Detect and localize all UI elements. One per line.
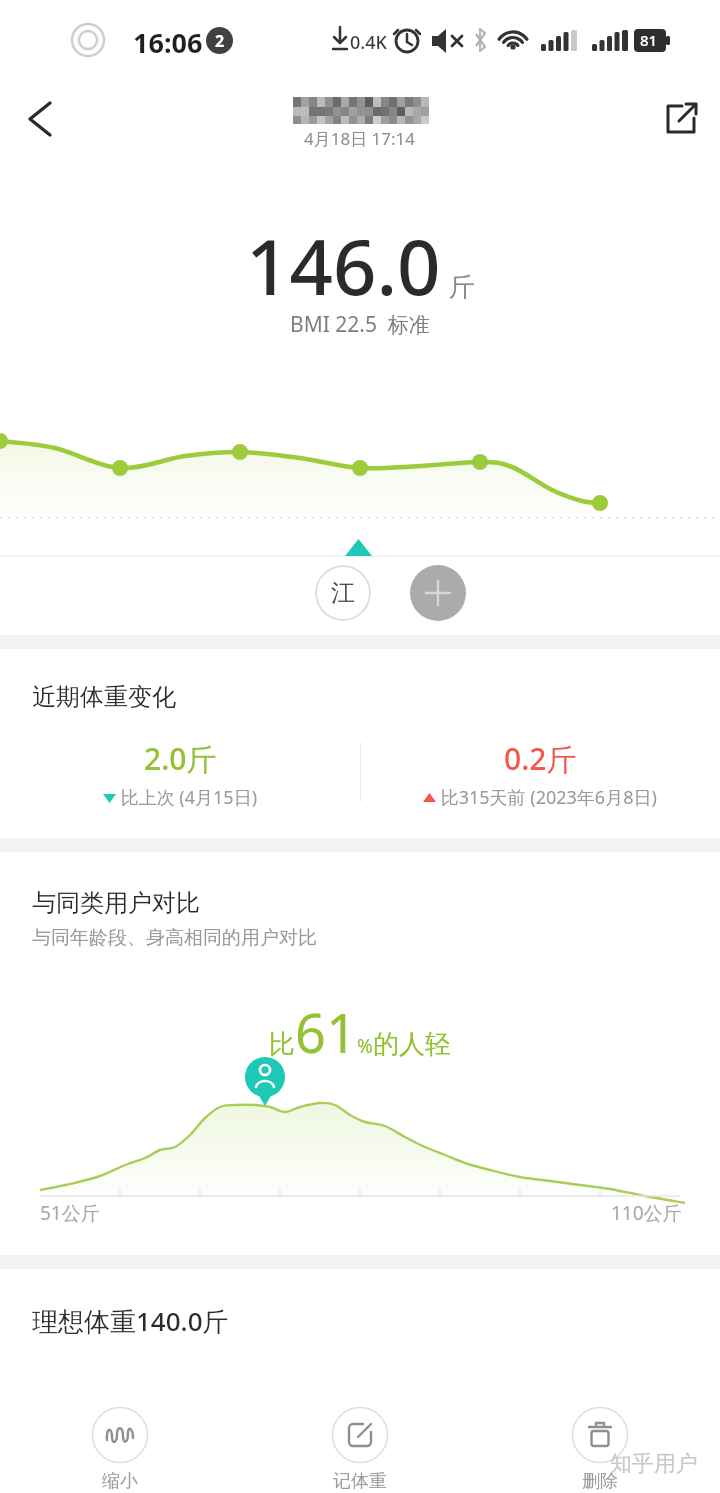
staticText: 理想体重140.0斤 [32,1303,229,1339]
staticText: 0.2斤 [504,738,577,779]
staticText: 比315天前 (2023年6月8日) [436,785,657,810]
button[interactable] [16,96,64,144]
staticText: 缩小 [102,1470,138,1493]
button[interactable]: 删除 [540,1406,660,1493]
staticText: 记体重 [333,1470,387,1493]
staticText: 2 [215,30,225,52]
staticText: 斤 [449,271,475,304]
staticText: 知乎用户 [610,1450,698,1478]
button[interactable] [656,94,704,142]
staticText: 0.4K [350,30,387,55]
button[interactable]: 记体重 [300,1406,420,1493]
staticText: 146.0 [246,214,441,318]
staticText: 81 [640,30,658,50]
staticText: 的人轻 [373,1028,451,1061]
staticText: 51公斤 [40,1200,100,1226]
staticText: 与同年龄段、身高相同的用户对比 [32,926,317,950]
staticText: BMI 22.5 标准 [290,310,430,339]
staticText: % [357,1033,373,1059]
staticText: 61 [295,995,357,1069]
staticText: 16:06 [133,24,203,61]
staticText: 与同类用户对比 [32,888,200,918]
button[interactable] [410,565,466,621]
staticText: 2.0斤 [144,738,217,779]
button[interactable]: 缩小 [60,1406,180,1493]
staticText: 删除 [582,1470,618,1493]
staticText: 比 [269,1028,295,1061]
staticText: 4月18日 17:14 [304,127,416,150]
staticText: 近期体重变化 [32,682,176,712]
staticText: 江 [331,578,355,608]
staticText: 比上次 (4月15日) [116,785,258,810]
staticText: 110公斤 [611,1200,682,1226]
button[interactable]: 江 [315,565,371,621]
